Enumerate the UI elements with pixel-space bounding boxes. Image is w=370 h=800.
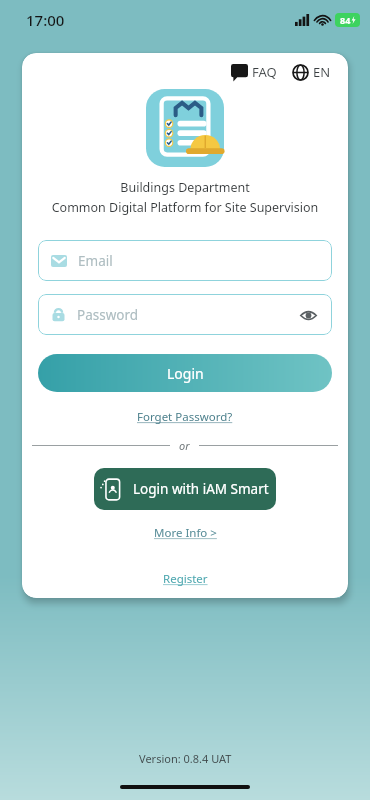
staticText: 84 bbox=[340, 14, 351, 26]
button[interactable]: FAQ bbox=[228, 59, 280, 85]
staticText: Common Digital Platform for Site Supervi… bbox=[22, 199, 348, 216]
button[interactable]: More Info > bbox=[150, 521, 221, 545]
staticText: Password bbox=[77, 306, 297, 324]
button[interactable]: Login with iAM Smart bbox=[94, 468, 276, 510]
button[interactable]: Register bbox=[159, 567, 212, 591]
button[interactable]: Forget Password? bbox=[133, 405, 237, 429]
button[interactable]: Login bbox=[38, 354, 332, 392]
staticText: Email bbox=[78, 252, 319, 270]
button[interactable]: Password bbox=[38, 294, 332, 335]
staticText: EN bbox=[313, 63, 331, 81]
staticText: Login with iAM Smart bbox=[133, 480, 269, 498]
staticText: FAQ bbox=[252, 63, 277, 81]
staticText: 17:00 bbox=[26, 10, 65, 30]
button[interactable]: EN bbox=[289, 59, 334, 85]
staticText: or bbox=[179, 438, 190, 453]
staticText: Version: 0.8.4 UAT bbox=[139, 751, 232, 766]
button[interactable]: Email bbox=[38, 240, 332, 281]
button[interactable]: Show password bbox=[297, 304, 319, 326]
staticText: Buildings Department bbox=[22, 179, 348, 196]
staticText: Login bbox=[167, 364, 204, 383]
